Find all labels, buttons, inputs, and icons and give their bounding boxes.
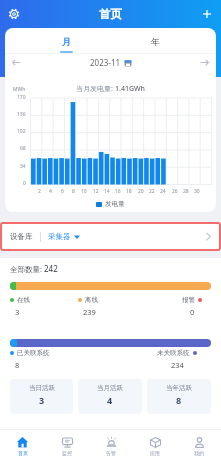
staticText: 采集器	[48, 232, 71, 241]
staticText: 6	[61, 188, 64, 195]
staticText: 8	[15, 360, 20, 370]
button[interactable]	[201, 8, 213, 20]
staticText: 8	[72, 188, 75, 195]
button[interactable]: 应用	[133, 430, 177, 471]
staticText: 20	[138, 188, 144, 195]
button[interactable]: 当年活跃	[147, 379, 211, 414]
staticText: 0	[190, 307, 195, 317]
button[interactable]	[12, 59, 21, 66]
button[interactable]: 当日活跃	[10, 379, 73, 414]
staticText: 当年活跃	[166, 384, 192, 392]
button[interactable]	[8, 8, 20, 20]
button[interactable]: 首页	[0, 430, 45, 471]
button[interactable]: 设备库	[0, 222, 221, 251]
staticText: 年	[151, 36, 160, 47]
staticText: 8	[176, 394, 182, 406]
staticText: 170	[17, 94, 26, 101]
staticText: 设备库	[10, 232, 33, 241]
staticText: 当月活跃	[97, 384, 123, 392]
staticText: 2	[38, 188, 41, 195]
staticText: 当日活跃	[29, 384, 55, 392]
staticText: 14	[104, 188, 110, 195]
staticText: 1.41GWh	[115, 84, 145, 94]
staticText: 离线	[85, 296, 98, 304]
staticText: 当月发电量:	[76, 84, 115, 94]
staticText: 0	[23, 180, 26, 187]
staticText: 我的	[194, 450, 204, 456]
staticText: 242	[44, 263, 58, 274]
staticText: 136	[17, 111, 26, 118]
staticText: 234	[171, 360, 184, 370]
staticText: 3	[15, 307, 20, 317]
staticText: 全部数量:	[10, 264, 44, 274]
staticText: 月	[62, 36, 71, 47]
staticText: 28	[183, 188, 189, 195]
button[interactable]: 告警	[89, 430, 133, 471]
staticText: 68	[20, 145, 26, 152]
staticText: 3	[39, 394, 45, 406]
staticText: 应用	[150, 450, 160, 456]
staticText: 34	[20, 163, 26, 170]
staticText: 239	[83, 307, 96, 317]
staticText: 在线	[17, 296, 30, 304]
staticText: 4	[49, 188, 52, 195]
button[interactable]: 年	[111, 28, 200, 53]
staticText: 12	[93, 188, 99, 195]
button[interactable]: 我的	[177, 430, 221, 471]
staticText: 102	[17, 128, 26, 135]
staticText: 未关联系统	[157, 349, 190, 357]
button[interactable]: 当月活跃	[78, 379, 142, 414]
staticText: 22	[149, 188, 155, 195]
staticText: 10	[81, 188, 87, 195]
staticText: 报警	[182, 296, 195, 304]
button[interactable]: 月	[22, 28, 111, 53]
button[interactable]: 2023-11	[90, 57, 132, 68]
staticText: 首页	[18, 450, 28, 456]
staticText: 首页	[99, 7, 122, 21]
staticText: 发电量	[105, 200, 125, 208]
staticText: 26	[172, 188, 178, 195]
button[interactable]: 监控	[45, 430, 89, 471]
staticText: 监控	[62, 450, 72, 456]
staticText: 告警	[106, 450, 116, 456]
staticText: MWh	[13, 86, 26, 93]
staticText: 已关联系统	[17, 349, 50, 357]
staticText: 24	[160, 188, 166, 195]
staticText: 30	[194, 188, 200, 195]
staticText: 18	[126, 188, 132, 195]
staticText: 2023-11	[90, 57, 121, 68]
staticText: 4	[107, 394, 113, 406]
button[interactable]	[200, 59, 209, 66]
staticText: 16	[115, 188, 121, 195]
